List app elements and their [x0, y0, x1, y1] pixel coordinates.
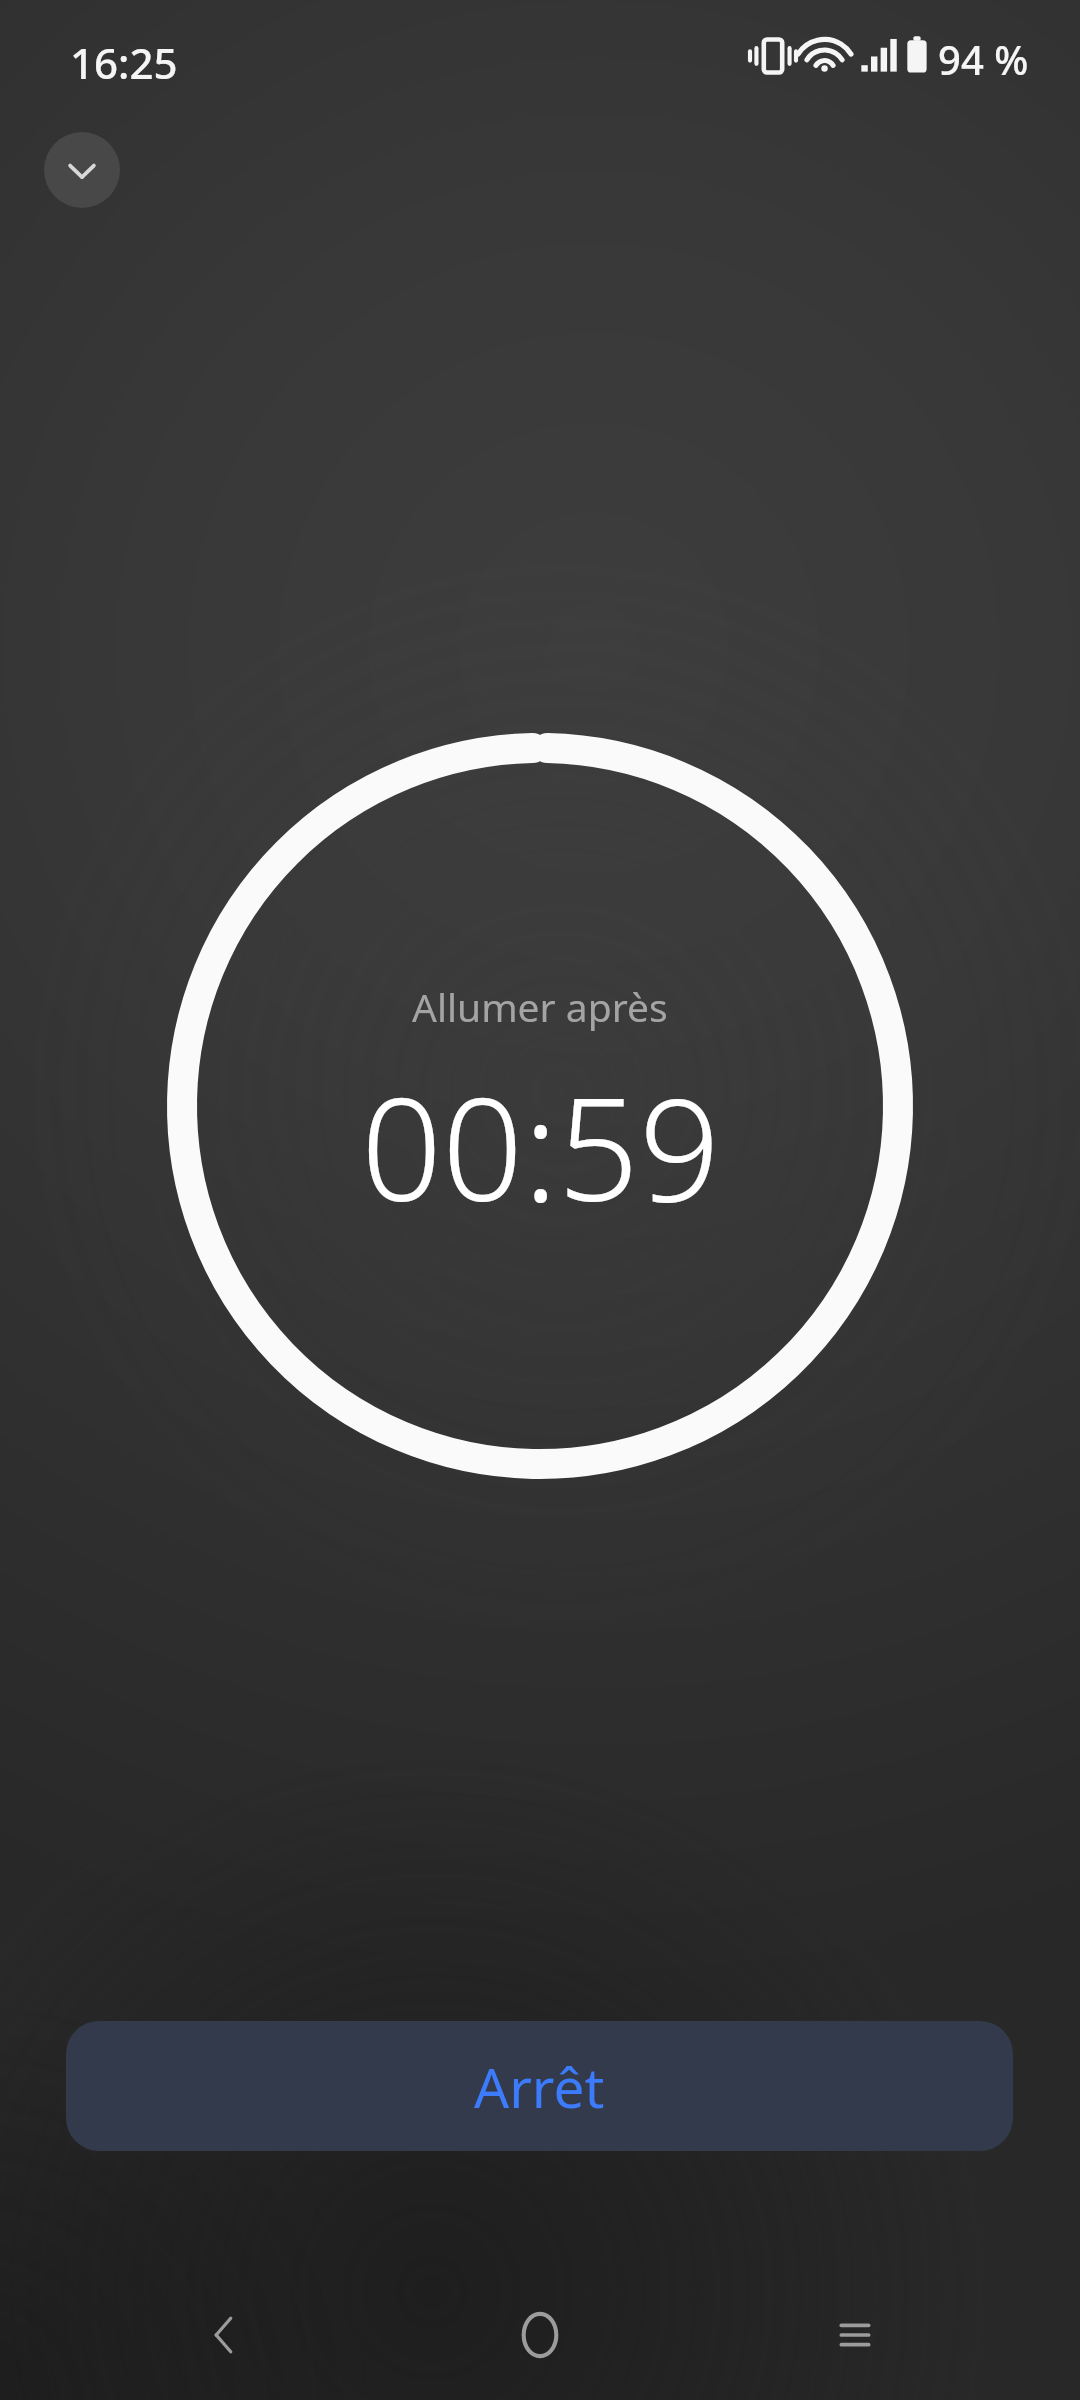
- button[interactable]: Arrêt: [66, 2021, 1013, 2151]
- staticText: 94 %: [938, 32, 1029, 86]
- button[interactable]: Recent apps: [785, 2290, 925, 2380]
- staticText: Allumer après: [412, 980, 668, 1033]
- staticText: 16:25: [70, 34, 178, 91]
- button[interactable]: Collapse: [44, 132, 120, 208]
- staticText: 00:59: [361, 1049, 720, 1242]
- staticText: Arrêt: [474, 2049, 605, 2124]
- button[interactable]: Home: [470, 2290, 610, 2380]
- button[interactable]: Back: [155, 2290, 295, 2380]
